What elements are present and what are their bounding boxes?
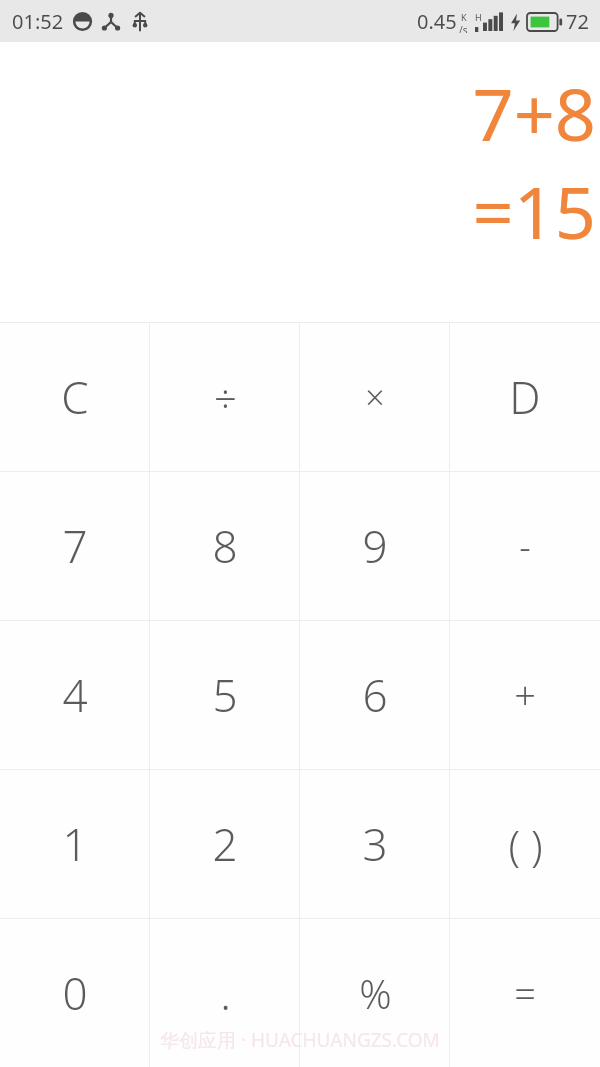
staticText: /s bbox=[459, 23, 468, 33]
button[interactable]: 1 bbox=[0, 770, 150, 918]
button[interactable]: 7 bbox=[0, 472, 150, 620]
button[interactable]: 2 bbox=[150, 770, 300, 918]
staticText: . bbox=[220, 963, 231, 1023]
staticText: D bbox=[509, 367, 541, 427]
staticText: 0 bbox=[62, 963, 88, 1023]
button[interactable]: - bbox=[450, 472, 600, 620]
staticText: H bbox=[475, 11, 482, 23]
staticText: C bbox=[61, 367, 89, 427]
staticText: 7+8 bbox=[472, 64, 596, 162]
button[interactable]: 3 bbox=[300, 770, 450, 918]
staticText: ( ) bbox=[508, 816, 543, 873]
staticText: 9 bbox=[362, 516, 388, 576]
button[interactable]: = bbox=[450, 919, 600, 1067]
button[interactable]: D bbox=[450, 323, 600, 471]
staticText: K bbox=[461, 11, 467, 23]
staticText: 6 bbox=[362, 665, 388, 725]
button[interactable]: C bbox=[0, 323, 150, 471]
button[interactable]: × bbox=[300, 323, 450, 471]
staticText: 华创应用 · HUACHUANGZS.COM bbox=[160, 1027, 440, 1053]
staticText: 72 bbox=[566, 8, 589, 35]
button[interactable]: 9 bbox=[300, 472, 450, 620]
button[interactable]: 4 bbox=[0, 621, 150, 769]
staticText: 8 bbox=[212, 516, 238, 576]
button[interactable]: ( ) bbox=[450, 770, 600, 918]
button[interactable]: ÷ bbox=[150, 323, 300, 471]
staticText: 3 bbox=[362, 814, 388, 874]
staticText: 01:52 bbox=[12, 8, 64, 35]
button[interactable]: 6 bbox=[300, 621, 450, 769]
staticText: 5 bbox=[212, 665, 238, 725]
staticText: 2 bbox=[212, 814, 238, 874]
staticText: 7 bbox=[62, 516, 88, 576]
staticText: ÷ bbox=[214, 370, 237, 424]
staticText: =15 bbox=[472, 162, 596, 260]
staticText: × bbox=[365, 374, 385, 420]
staticText: 0.45 bbox=[417, 8, 457, 35]
staticText: 1 bbox=[62, 814, 88, 874]
staticText: % bbox=[359, 966, 392, 1020]
staticText: - bbox=[519, 522, 531, 571]
button[interactable]: % bbox=[300, 919, 450, 1067]
button[interactable]: 8 bbox=[150, 472, 300, 620]
button[interactable]: 0 bbox=[0, 919, 150, 1067]
staticText: = bbox=[514, 967, 536, 1019]
button[interactable]: + bbox=[450, 621, 600, 769]
button[interactable]: . bbox=[150, 919, 300, 1067]
button[interactable]: 5 bbox=[150, 621, 300, 769]
staticText: 4 bbox=[62, 665, 88, 725]
staticText: + bbox=[514, 669, 536, 721]
